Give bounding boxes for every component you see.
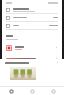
button[interactable] xyxy=(2,6,62,13)
button[interactable]: Home xyxy=(0,87,22,95)
button[interactable] xyxy=(2,14,62,21)
button[interactable] xyxy=(2,22,62,29)
button[interactable] xyxy=(0,61,64,64)
button[interactable] xyxy=(2,43,62,52)
button[interactable]: Photo xyxy=(10,67,36,80)
button[interactable] xyxy=(2,56,62,61)
button[interactable] xyxy=(2,64,62,73)
button[interactable]: Settings xyxy=(43,87,64,95)
button[interactable]: Browse xyxy=(22,87,43,95)
